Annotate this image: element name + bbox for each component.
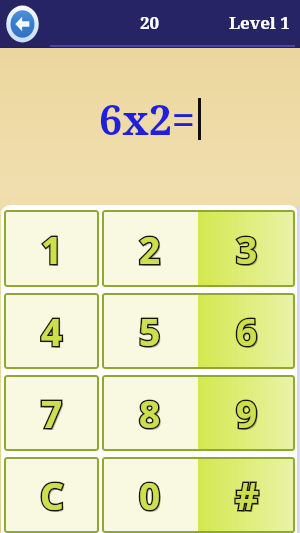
staticText: 9	[236, 388, 258, 438]
button[interactable]: 0	[102, 457, 198, 533]
button[interactable]: #	[198, 457, 295, 533]
staticText: 4	[41, 306, 63, 356]
staticText: 6	[236, 306, 258, 356]
button[interactable]: 8	[102, 375, 198, 451]
staticText: 4	[41, 306, 63, 356]
staticText: 7	[43, 390, 65, 440]
staticText: 5	[139, 306, 161, 356]
staticText: #	[235, 470, 259, 520]
staticText: 2	[141, 226, 163, 276]
staticText: 0	[141, 472, 163, 522]
staticText: 7	[41, 388, 63, 438]
button[interactable]: 5	[102, 293, 198, 369]
staticText: 4	[43, 308, 65, 358]
staticText: 7	[41, 388, 63, 438]
button[interactable]: 6	[198, 293, 295, 369]
staticText: 6	[238, 308, 260, 358]
button[interactable]: 7	[4, 375, 99, 451]
staticText: 20	[140, 11, 160, 34]
staticText: #	[237, 472, 261, 522]
button[interactable]: Back	[4, 3, 41, 45]
staticText: 5	[139, 306, 161, 356]
button[interactable]: 4	[4, 293, 99, 369]
staticText: #	[235, 470, 259, 520]
staticText: 1	[41, 224, 63, 274]
button[interactable]: 2	[102, 210, 198, 287]
staticText: 3	[236, 224, 258, 274]
staticText: 3	[238, 226, 260, 276]
staticText: 2	[139, 224, 161, 274]
staticText: 0	[139, 470, 161, 520]
staticText: 2	[139, 224, 161, 274]
staticText: 3	[236, 224, 258, 274]
staticText: C	[40, 470, 64, 520]
staticText: 0	[139, 470, 161, 520]
staticText: C	[42, 472, 66, 522]
staticText: 9	[238, 390, 260, 440]
button[interactable]: 9	[198, 375, 295, 451]
staticText: 6	[236, 306, 258, 356]
staticText: Level 1	[229, 11, 290, 34]
button[interactable]: 1	[4, 210, 99, 287]
button[interactable]: 3	[198, 210, 295, 287]
staticText: 5	[141, 308, 163, 358]
staticText: C	[40, 470, 64, 520]
staticText: 6x2=	[99, 91, 195, 147]
staticText: 9	[236, 388, 258, 438]
staticText: 8	[141, 390, 163, 440]
staticText: 1	[43, 226, 65, 276]
staticText: 8	[139, 388, 161, 438]
staticText: 1	[41, 224, 63, 274]
staticText: 8	[139, 388, 161, 438]
button[interactable]: C	[4, 457, 99, 533]
